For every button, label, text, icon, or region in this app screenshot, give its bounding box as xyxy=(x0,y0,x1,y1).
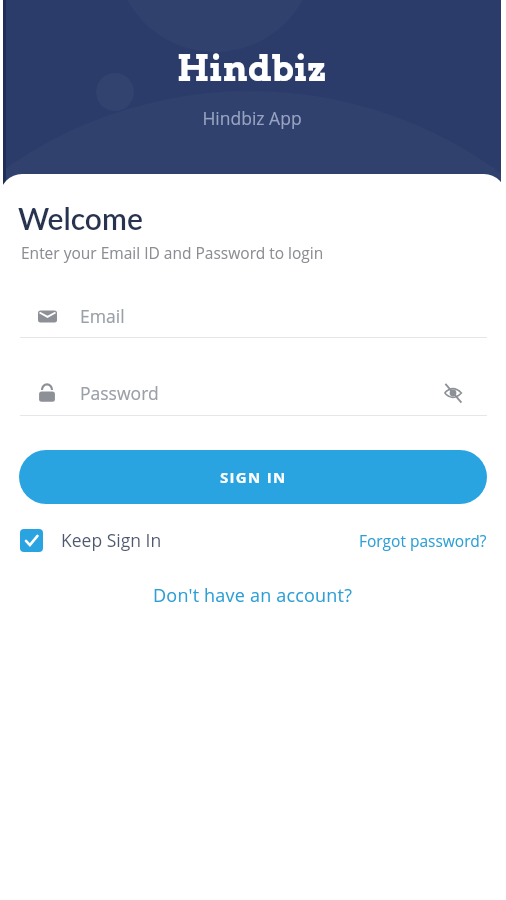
button[interactable] xyxy=(443,383,463,403)
staticText: Welcome xyxy=(18,200,143,236)
button[interactable]: Forgot password? xyxy=(359,530,487,551)
staticText: Enter your Email ID and Password to logi… xyxy=(21,242,324,263)
staticText: SIGN IN xyxy=(220,467,287,487)
staticText: Forgot password? xyxy=(359,530,487,551)
staticText: Don't have an account? xyxy=(153,583,353,608)
button[interactable]: SIGN IN xyxy=(19,450,487,504)
staticText: Hindbiz App xyxy=(3,106,501,130)
button[interactable]: Email xyxy=(20,294,487,338)
staticText: Password xyxy=(80,381,159,405)
button[interactable]: Don't have an account? xyxy=(153,583,353,608)
button[interactable]: Password xyxy=(20,371,487,415)
staticText: Keep Sign In xyxy=(61,528,162,552)
staticText: Hindbiz xyxy=(3,47,501,89)
staticText: Email xyxy=(80,304,125,328)
button[interactable]: Keep Sign In xyxy=(20,526,162,554)
